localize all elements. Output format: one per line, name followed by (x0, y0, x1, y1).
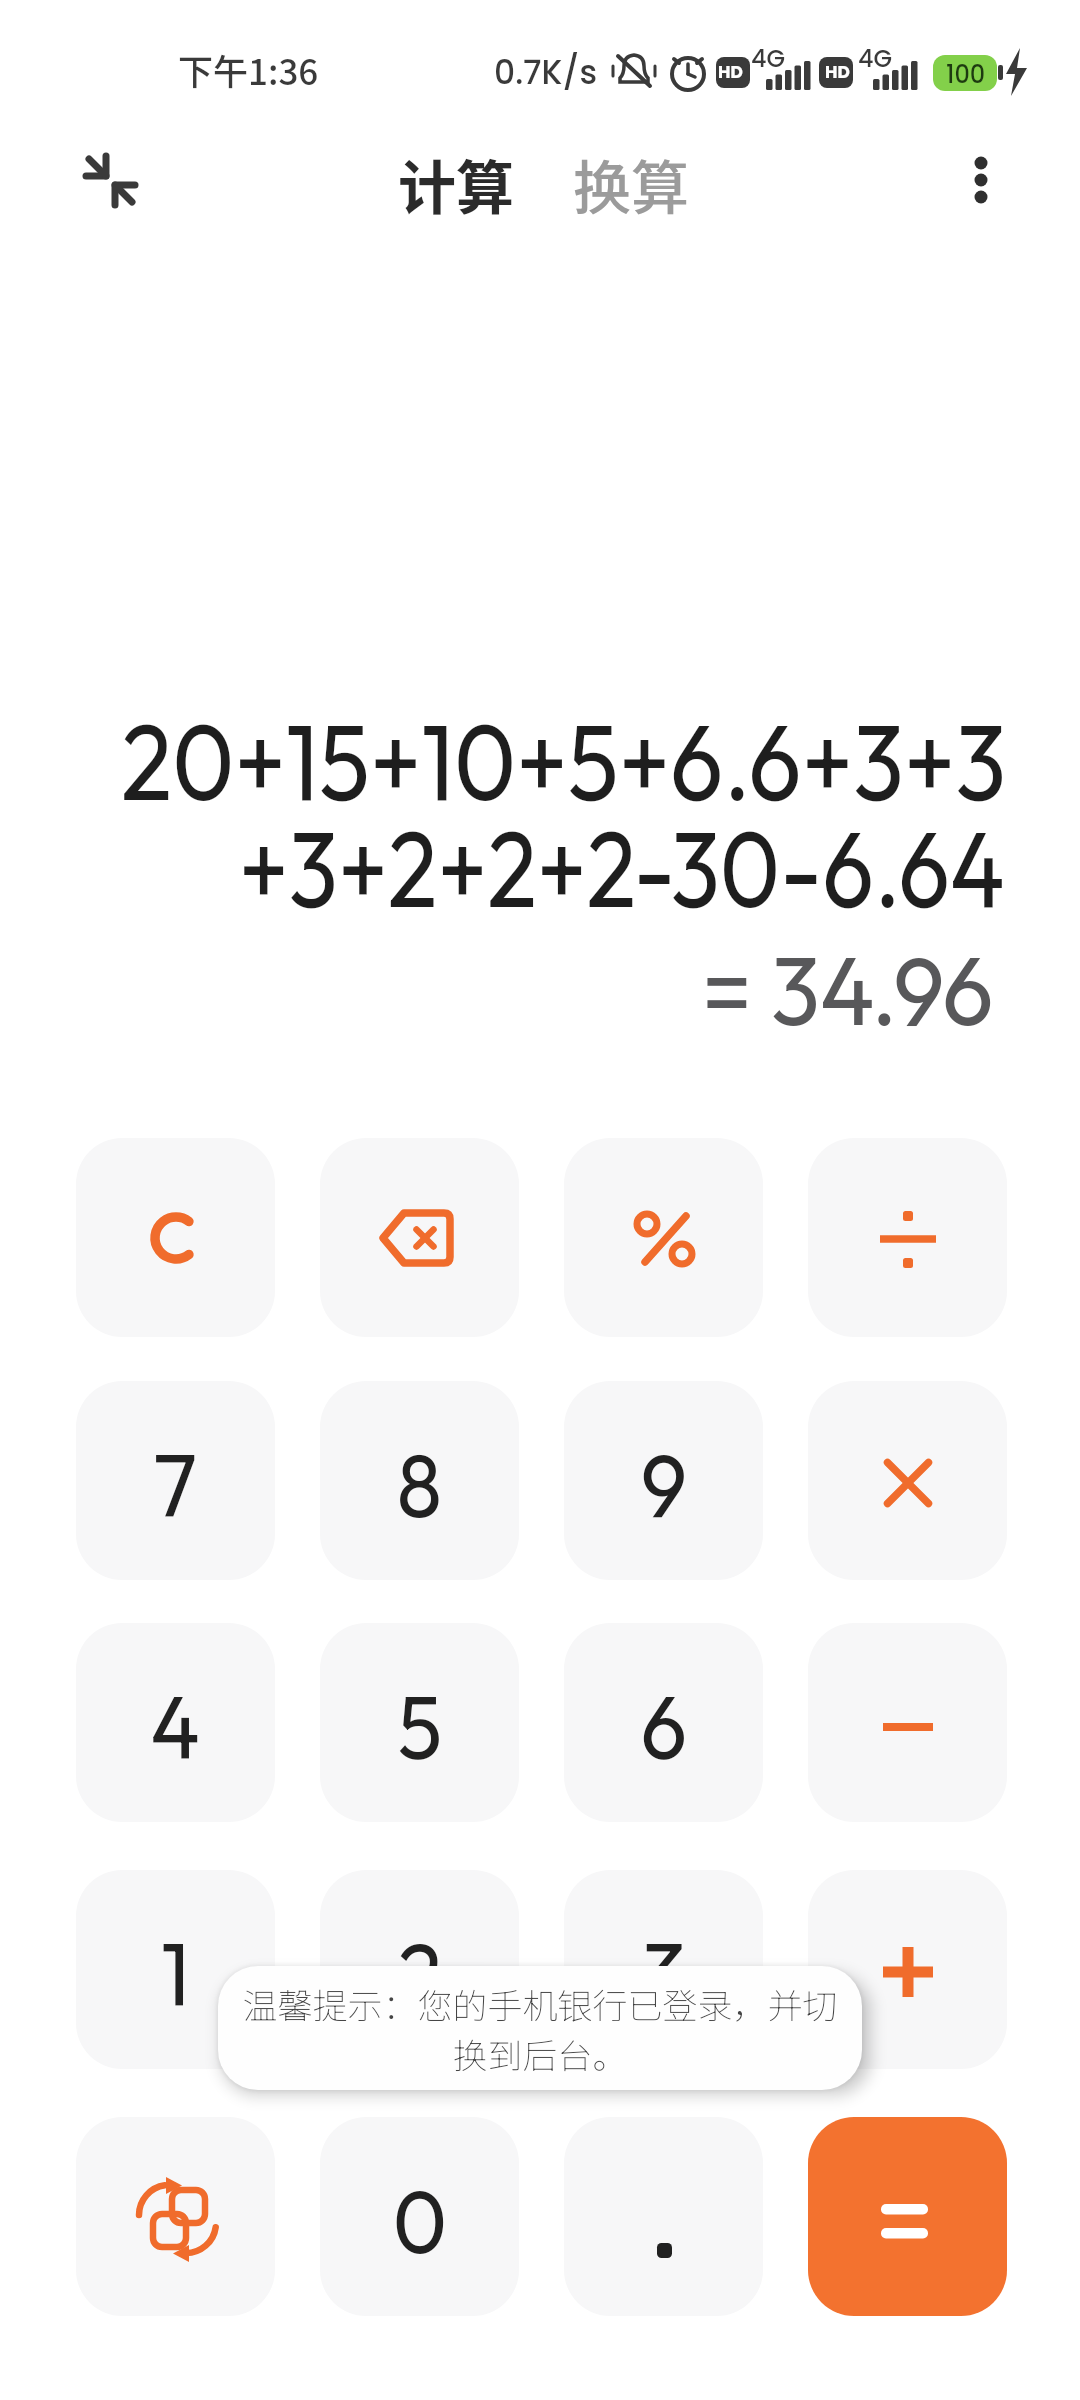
staticText: +3+2+2+2-30-6.64 (239, 800, 1005, 935)
button[interactable]: 7 (76, 1381, 275, 1580)
staticText: 100 (946, 58, 986, 92)
staticText: 8 (396, 1429, 443, 1540)
button[interactable]: 8 (320, 1381, 519, 1580)
button[interactable] (564, 1138, 763, 1337)
button[interactable] (320, 1138, 519, 1337)
staticText: 2 (397, 1918, 442, 2029)
staticText: = 34.96 (702, 928, 994, 1050)
staticText: HD (825, 60, 850, 84)
staticText: 20+15+10+5+6.6+3+3 (121, 693, 1007, 828)
button[interactable]: 2 (320, 1870, 519, 2069)
staticText: 0.7K/s (494, 49, 598, 95)
staticText: 温馨提示：您的手机银行已登录，并切 换到后台。 (242, 1978, 838, 2079)
staticText: 4 (151, 1671, 200, 1782)
button[interactable]: 计算 (398, 142, 515, 226)
staticText: 1 (161, 1918, 190, 2029)
button[interactable]: 5 (320, 1623, 519, 1822)
button[interactable]: 1 (76, 1870, 275, 2069)
button[interactable] (951, 150, 1011, 210)
staticText: 6 (640, 1671, 687, 1782)
button[interactable] (808, 2117, 1007, 2316)
button[interactable]: 4 (76, 1623, 275, 1822)
button[interactable] (808, 1870, 1007, 2069)
staticText: 9 (640, 1429, 687, 1540)
staticText: 4G (751, 42, 786, 76)
button[interactable] (808, 1623, 1007, 1822)
staticText: HD (718, 60, 743, 84)
button[interactable]: 9 (564, 1381, 763, 1580)
button[interactable] (808, 1381, 1007, 1580)
button[interactable]: 0 (320, 2117, 519, 2316)
button[interactable] (808, 1138, 1007, 1337)
button[interactable] (76, 1138, 275, 1337)
button[interactable] (564, 2117, 763, 2316)
button[interactable] (76, 2117, 275, 2316)
staticText: 7 (153, 1429, 198, 1540)
staticText: 3 (641, 1918, 686, 2029)
button[interactable]: 6 (564, 1623, 763, 1822)
button[interactable]: 换算 (573, 142, 690, 226)
button[interactable]: 3 (564, 1870, 763, 2069)
button[interactable] (70, 140, 150, 220)
staticText: 下午1:36 (178, 44, 319, 95)
staticText: 0 (393, 2165, 447, 2276)
staticText: 4G (858, 42, 893, 76)
staticText: 5 (397, 1671, 442, 1782)
